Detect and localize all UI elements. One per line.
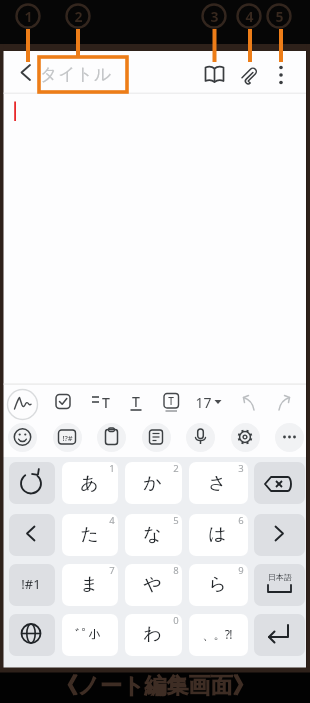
staticText: た	[80, 523, 99, 546]
button[interactable]	[202, 62, 228, 88]
button[interactable]	[62, 514, 118, 556]
staticText: 1	[24, 7, 33, 25]
button[interactable]	[125, 564, 182, 606]
staticText: T	[168, 394, 174, 408]
staticText: 、。?!	[202, 626, 232, 642]
staticText: わ	[143, 623, 162, 646]
staticText: 2	[74, 7, 83, 25]
staticText: 7	[109, 564, 115, 576]
button[interactable]: タイトル	[40, 60, 130, 88]
button[interactable]	[189, 462, 248, 504]
staticText: ﾞﾟ小	[75, 628, 101, 641]
staticText: か	[143, 472, 162, 495]
staticText: 8	[173, 564, 179, 576]
staticText: 3	[210, 7, 219, 25]
button[interactable]	[8, 423, 37, 452]
button[interactable]	[189, 614, 248, 656]
staticText: 2	[173, 462, 179, 474]
button[interactable]	[274, 423, 303, 452]
staticText: 1	[109, 462, 115, 474]
button[interactable]	[9, 564, 55, 606]
staticText: ま	[80, 573, 99, 596]
staticText: 17	[195, 393, 212, 412]
staticText: 9	[238, 564, 244, 576]
staticText: な	[143, 523, 162, 546]
button[interactable]	[9, 462, 55, 504]
button[interactable]	[254, 564, 305, 606]
button[interactable]	[254, 514, 305, 556]
staticText: 5	[173, 514, 179, 526]
button[interactable]	[268, 62, 294, 88]
button[interactable]	[125, 514, 182, 556]
button[interactable]	[14, 62, 40, 88]
button[interactable]	[125, 614, 182, 656]
staticText: !#1	[21, 575, 41, 593]
staticText: 0	[173, 614, 179, 626]
staticText: や	[143, 573, 162, 596]
button[interactable]	[52, 423, 81, 452]
staticText: 4	[109, 514, 115, 526]
staticText: 5	[275, 7, 284, 25]
button[interactable]	[254, 614, 305, 656]
button[interactable]	[189, 564, 248, 606]
staticText: あ	[80, 472, 99, 495]
button[interactable]	[125, 462, 182, 504]
staticText: タイトル	[40, 64, 112, 85]
staticText: ら	[208, 573, 227, 596]
button[interactable]	[189, 514, 248, 556]
staticText: 4	[245, 7, 254, 25]
staticText: 6	[238, 514, 244, 526]
button[interactable]	[62, 564, 118, 606]
staticText: 3	[238, 462, 244, 474]
staticText: 日本語	[268, 572, 292, 582]
staticText: 《ノート編集画面》	[55, 672, 255, 700]
staticText: さ	[208, 472, 227, 495]
button[interactable]	[9, 514, 55, 556]
staticText: T	[132, 392, 140, 411]
staticText: T	[102, 393, 110, 412]
button[interactable]	[97, 423, 126, 452]
button[interactable]	[186, 423, 215, 452]
button[interactable]	[141, 423, 170, 452]
button[interactable]	[9, 614, 55, 656]
staticText: !?#	[62, 433, 73, 443]
staticText: は	[208, 523, 227, 546]
button[interactable]	[230, 423, 259, 452]
button[interactable]	[62, 462, 118, 504]
button[interactable]	[62, 614, 118, 656]
button[interactable]	[237, 62, 263, 88]
button[interactable]	[254, 462, 305, 504]
